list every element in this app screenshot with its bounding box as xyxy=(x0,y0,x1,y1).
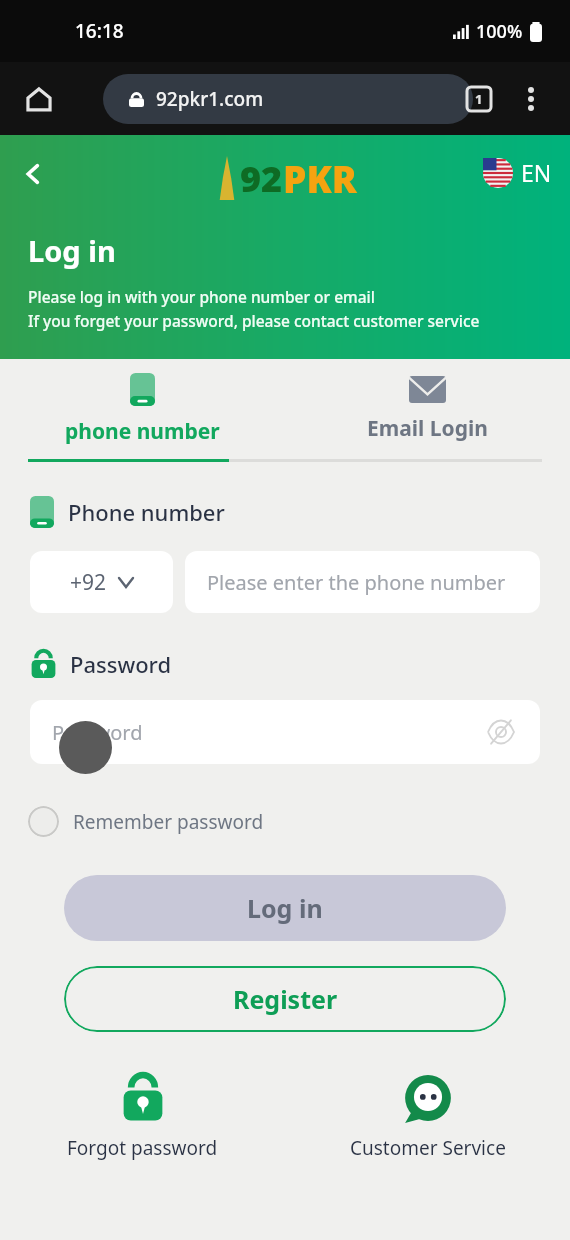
staticText: phone number xyxy=(65,417,220,446)
staticText: Register xyxy=(233,982,338,1016)
button[interactable]: Log in xyxy=(64,875,506,941)
staticText: Remember password xyxy=(73,809,264,835)
staticText: 16:18 xyxy=(75,18,124,44)
button[interactable]: Email Login xyxy=(285,359,570,459)
staticText: If you forget your password, please cont… xyxy=(28,310,480,331)
staticText: PKR xyxy=(283,153,357,203)
button[interactable]: Back xyxy=(8,149,58,199)
button[interactable]: Home xyxy=(16,76,62,122)
staticText: +92 xyxy=(70,568,107,597)
staticText: Password xyxy=(70,649,172,679)
staticText: 92pkr1.com xyxy=(156,86,264,112)
staticText: 92 xyxy=(240,154,283,203)
staticText: Please log in with your phone number or … xyxy=(28,286,375,307)
staticText: 100% xyxy=(476,19,523,44)
button[interactable]: Please enter the phone number xyxy=(185,551,540,613)
button[interactable]: Forgot password xyxy=(0,1072,285,1161)
button[interactable]: 92pkr1.com xyxy=(103,74,473,124)
button[interactable]: Password xyxy=(30,700,540,764)
staticText: Please enter the phone number xyxy=(207,569,506,596)
staticText: Phone number xyxy=(68,497,225,527)
button[interactable]: Show password xyxy=(484,715,518,749)
button[interactable]: Remember password xyxy=(28,806,264,837)
staticText: Password xyxy=(52,719,484,746)
staticText: Log in xyxy=(28,231,116,270)
staticText: Email Login xyxy=(367,414,488,443)
button[interactable]: EN xyxy=(483,157,552,188)
staticText: Forgot password xyxy=(67,1135,218,1161)
button[interactable]: Register xyxy=(64,966,506,1032)
staticText: Customer Service xyxy=(350,1135,506,1161)
button[interactable]: +92 xyxy=(30,551,173,613)
staticText: 1 xyxy=(475,90,483,108)
button[interactable]: More options xyxy=(510,78,552,120)
staticText: EN xyxy=(521,157,552,188)
button[interactable]: Tabs xyxy=(458,78,500,120)
button[interactable]: Customer Service xyxy=(285,1072,570,1161)
staticText: Log in xyxy=(247,891,323,925)
button[interactable]: phone number xyxy=(0,359,285,459)
